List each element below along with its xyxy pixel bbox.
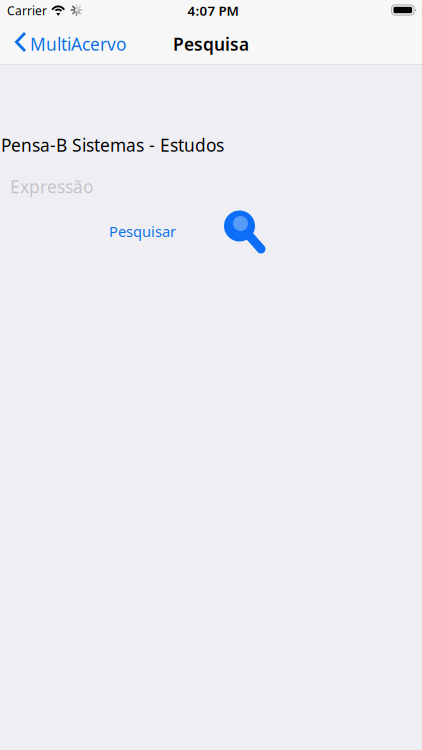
- staticText: Expressão: [10, 175, 93, 198]
- staticText: Pesquisa: [173, 32, 249, 55]
- staticText: MultiAcervo: [30, 32, 126, 55]
- staticText: 4:07 PM: [187, 2, 238, 19]
- staticText: Pensa-B Sistemas - Estudos: [1, 133, 224, 156]
- button[interactable]: MultiAcervo: [0, 20, 134, 64]
- button[interactable]: Pesquisar: [224, 210, 265, 253]
- staticText: Carrier: [7, 2, 47, 18]
- button[interactable]: Expressão: [0, 173, 412, 199]
- staticText: Pesquisar: [109, 221, 176, 241]
- button[interactable]: Pesquisar: [105, 217, 180, 245]
